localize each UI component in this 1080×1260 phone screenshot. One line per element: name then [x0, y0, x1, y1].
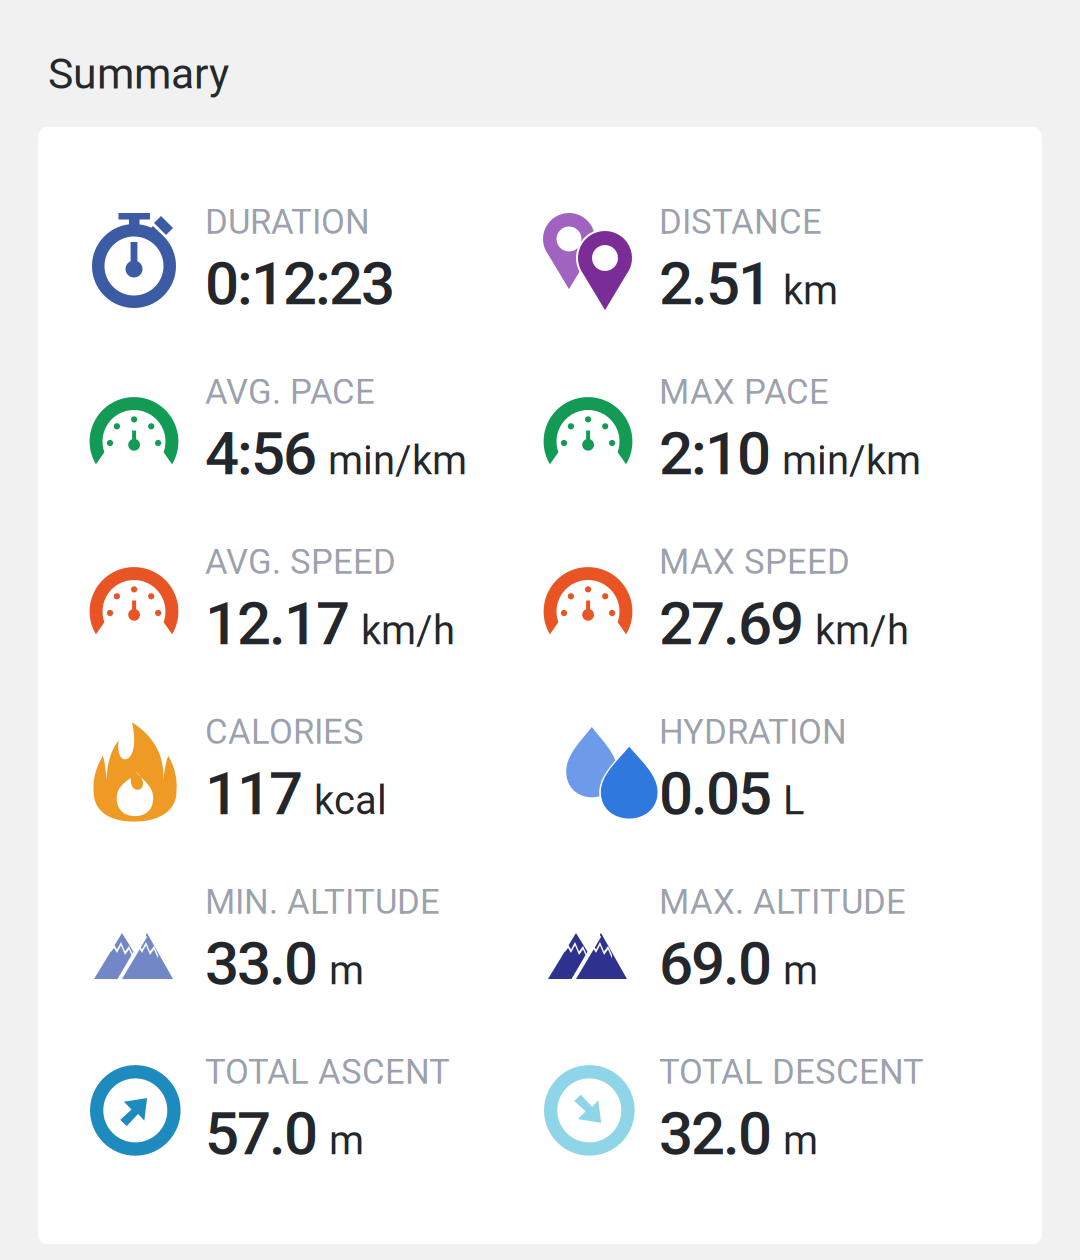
staticText: AVG. PACE — [205, 371, 375, 412]
staticText: min/km — [328, 437, 467, 484]
button[interactable]: TOTAL DESCENT — [492, 1019, 946, 1189]
staticText: HYDRATION — [659, 711, 847, 752]
button[interactable]: HYDRATION — [492, 679, 946, 849]
staticText: km — [783, 267, 838, 314]
staticText: kcal — [314, 777, 387, 824]
staticText: m — [783, 947, 818, 994]
staticText: TOTAL ASCENT — [205, 1051, 450, 1092]
staticText: 69.0 — [659, 928, 772, 999]
staticText: 33.0 — [205, 928, 318, 999]
staticText: min/km — [782, 437, 921, 484]
staticText: CALORIES — [205, 711, 364, 752]
staticText: 0:12:23 — [205, 248, 395, 319]
button[interactable]: AVG. PACE — [38, 339, 492, 509]
staticText: 32.0 — [659, 1098, 772, 1169]
staticText: km/h — [361, 607, 455, 654]
button[interactable]: MIN. ALTITUDE — [38, 849, 492, 1019]
staticText: 57.0 — [205, 1098, 318, 1169]
staticText: 27.69 — [659, 588, 804, 659]
staticText: DISTANCE — [659, 201, 822, 242]
button[interactable]: CALORIES — [38, 679, 492, 849]
staticText: m — [783, 1117, 818, 1164]
staticText: 0.05 — [659, 758, 772, 829]
button[interactable]: MAX. ALTITUDE — [492, 849, 946, 1019]
staticText: 2:10 — [659, 418, 771, 489]
staticText: MAX SPEED — [659, 541, 850, 582]
staticText: MAX PACE — [659, 371, 829, 412]
button[interactable]: DISTANCE — [492, 169, 946, 339]
button[interactable]: DURATION — [38, 169, 492, 339]
button[interactable]: TOTAL ASCENT — [38, 1019, 492, 1189]
staticText: MAX. ALTITUDE — [659, 881, 906, 922]
staticText: AVG. SPEED — [205, 541, 396, 582]
staticText: 12.17 — [205, 588, 350, 659]
staticText: MIN. ALTITUDE — [205, 881, 440, 922]
button[interactable]: AVG. SPEED — [38, 509, 492, 679]
button[interactable]: MAX SPEED — [492, 509, 946, 679]
button[interactable]: MAX PACE — [492, 339, 946, 509]
staticText: m — [329, 1117, 364, 1164]
staticText: 117 — [205, 758, 303, 829]
staticText: DURATION — [205, 201, 370, 242]
staticText: 2.51 — [659, 248, 772, 319]
staticText: L — [783, 777, 805, 824]
staticText: TOTAL DESCENT — [659, 1051, 924, 1092]
staticText: 4:56 — [205, 418, 317, 489]
staticText: m — [329, 947, 364, 994]
staticText: km/h — [815, 607, 909, 654]
staticText: Summary — [48, 49, 229, 99]
